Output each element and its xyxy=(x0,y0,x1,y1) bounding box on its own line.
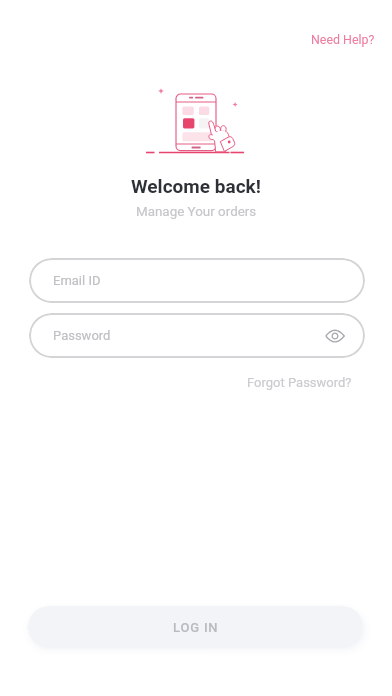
staticText: Forgot Password? xyxy=(247,375,352,390)
staticText: LOG IN xyxy=(173,620,219,635)
button[interactable]: Show password xyxy=(323,324,347,348)
button[interactable]: Password xyxy=(29,313,365,358)
button[interactable]: Email ID xyxy=(29,258,365,303)
button[interactable]: Forgot Password? xyxy=(243,372,356,393)
staticText: Welcome back! xyxy=(131,175,261,197)
staticText: Password xyxy=(53,328,111,343)
staticText: Need Help? xyxy=(311,32,375,47)
button[interactable]: LOG IN xyxy=(28,606,363,648)
staticText: Manage Your orders xyxy=(136,204,257,220)
button[interactable]: Need Help? xyxy=(305,28,381,51)
staticText: Email ID xyxy=(53,273,101,288)
